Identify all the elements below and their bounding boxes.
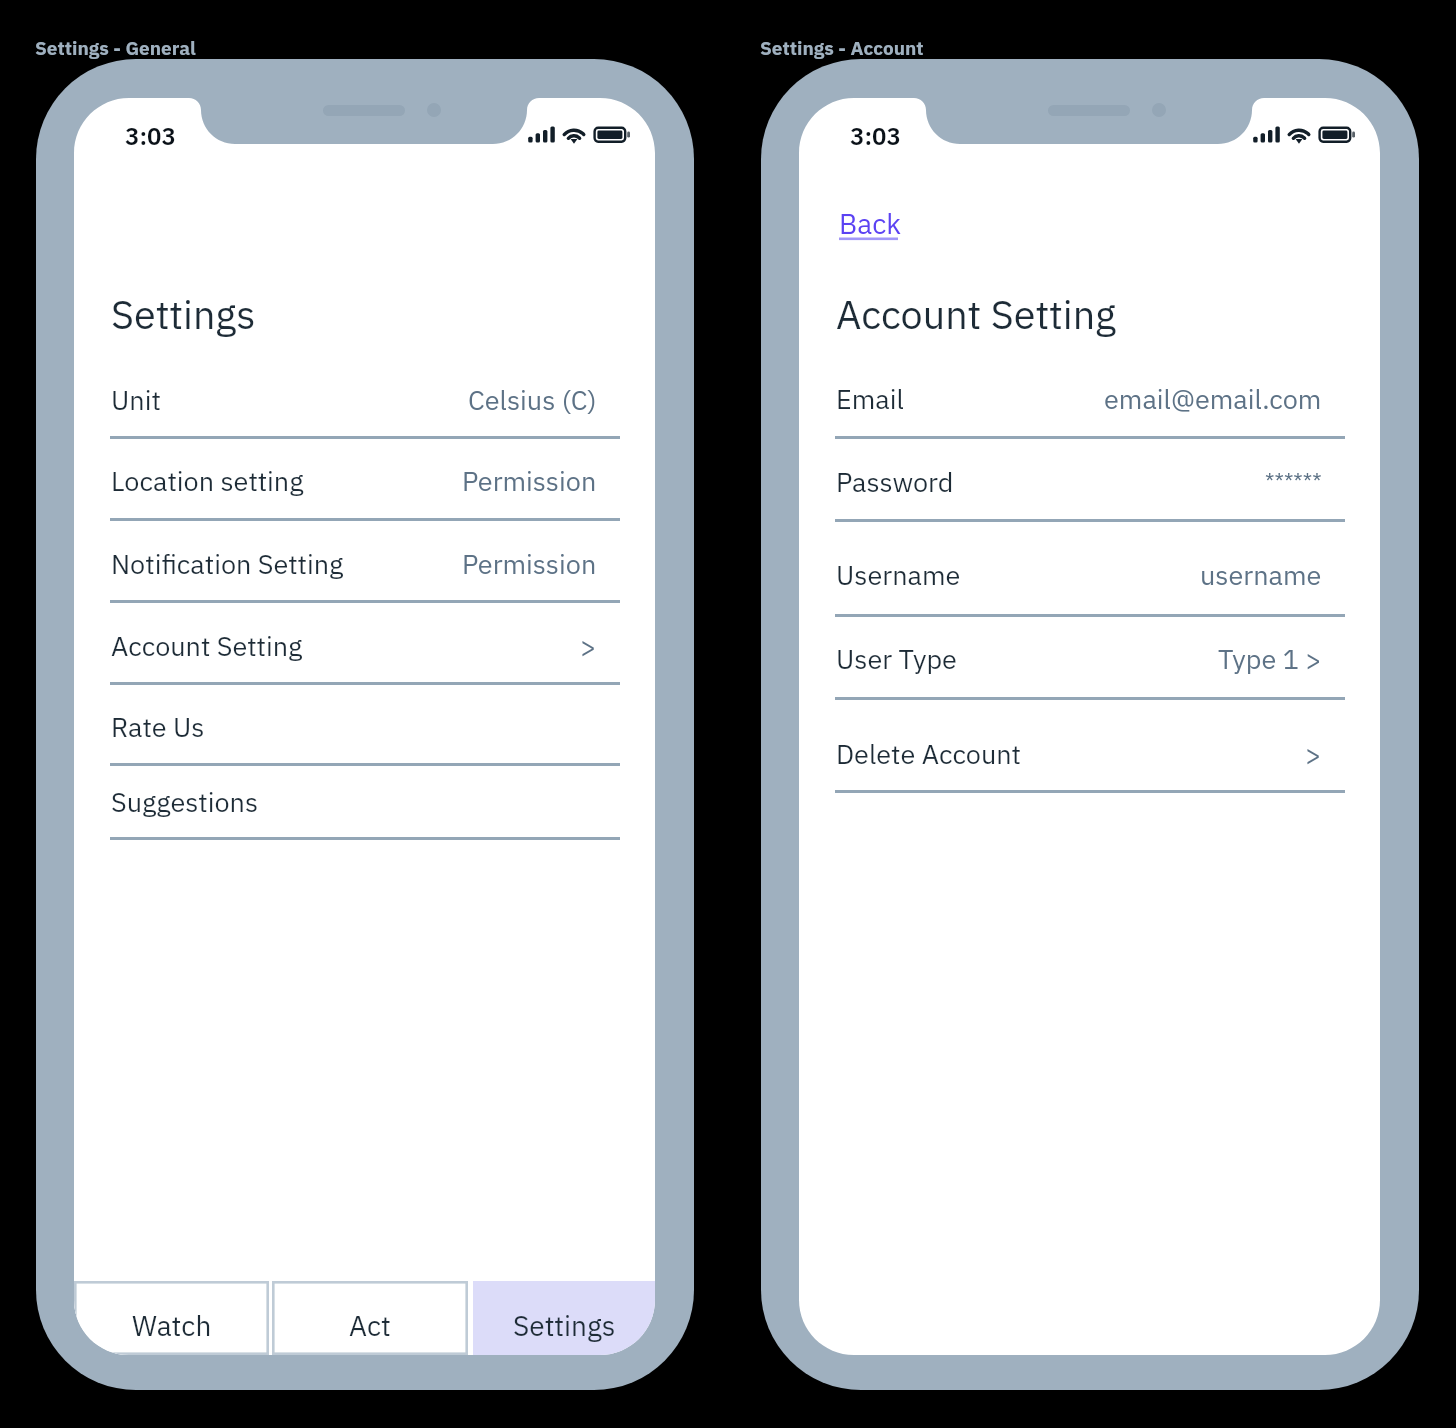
button[interactable]: Account Setting: [74, 603, 655, 685]
staticText: Watch: [132, 1307, 212, 1343]
staticText: Username: [836, 557, 961, 592]
staticText: Rate Us: [111, 709, 205, 744]
staticText: Email: [836, 381, 904, 416]
button[interactable]: Act: [272, 1281, 468, 1355]
button[interactable]: Email: [799, 356, 1380, 439]
staticText: Settings - General: [35, 36, 196, 61]
button[interactable]: Username: [799, 522, 1380, 617]
staticText: >: [580, 628, 597, 663]
button[interactable]: Watch: [74, 1281, 269, 1355]
staticText: Account Setting: [111, 628, 303, 663]
staticText: Settings - Account: [760, 36, 924, 61]
staticText: Act: [349, 1307, 391, 1343]
staticText: 3:03: [850, 120, 901, 150]
button[interactable]: Notification Setting: [74, 521, 655, 603]
button[interactable]: Back: [839, 198, 1380, 248]
staticText: Unit: [111, 382, 161, 417]
staticText: username: [1200, 557, 1322, 592]
staticText: email@email.com: [1104, 381, 1322, 416]
staticText: Type 1 >: [1218, 641, 1322, 676]
staticText: ******: [1265, 466, 1322, 493]
button[interactable]: Rate Us: [74, 685, 655, 766]
button[interactable]: User Type: [799, 617, 1380, 700]
button[interactable]: Location setting: [74, 439, 655, 521]
staticText: Location setting: [111, 463, 304, 498]
staticText: Back: [839, 205, 902, 241]
staticText: Delete Account: [836, 736, 1022, 771]
staticText: Permission: [462, 463, 597, 498]
staticText: Permission: [462, 546, 597, 581]
staticText: Settings: [111, 289, 256, 340]
staticText: Account Setting: [836, 289, 1116, 340]
staticText: Celsius (C): [468, 382, 597, 417]
staticText: User Type: [836, 641, 957, 676]
button[interactable]: Suggestions: [74, 766, 655, 840]
staticText: Password: [836, 464, 954, 499]
staticText: Settings: [513, 1307, 616, 1343]
button[interactable]: Password: [799, 439, 1380, 522]
staticText: Notification Setting: [111, 546, 344, 581]
button[interactable]: Delete Account: [799, 700, 1380, 793]
staticText: >: [1305, 736, 1322, 771]
staticText: Suggestions: [111, 784, 259, 819]
button[interactable]: Unit: [74, 359, 655, 439]
button[interactable]: Settings: [473, 1281, 655, 1355]
staticText: 3:03: [125, 120, 176, 150]
